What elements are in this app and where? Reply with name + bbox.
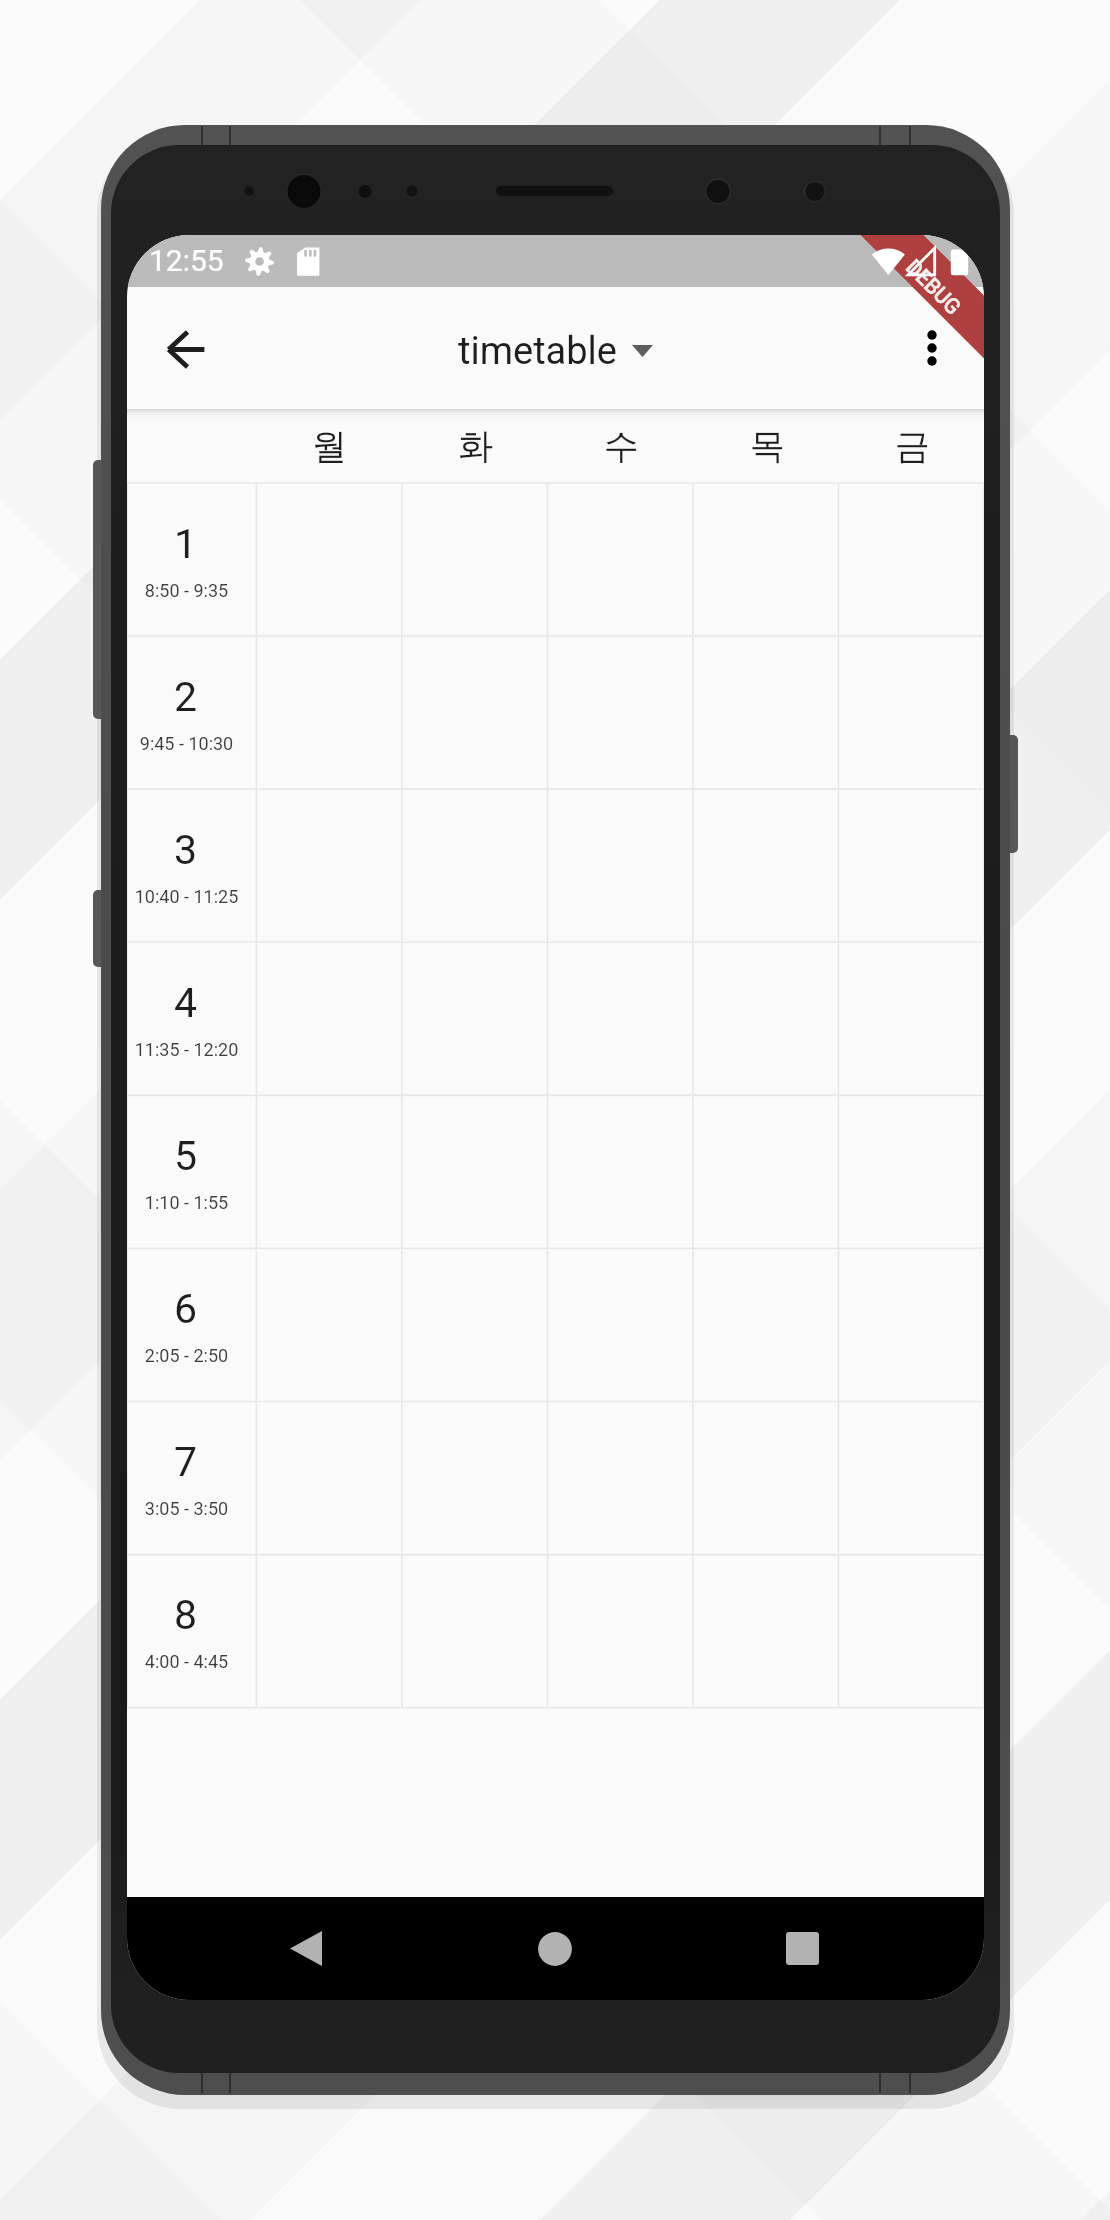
staticText: 10:40 - 11:25: [127, 886, 251, 907]
staticText: 9:45 - 10:30: [127, 733, 251, 754]
staticText: 금: [895, 424, 930, 468]
staticText: 7: [127, 1438, 250, 1486]
button[interactable]: Back: [241, 1897, 371, 2000]
staticText: 2: [127, 673, 250, 721]
button[interactable]: 화: [402, 409, 548, 483]
staticText: 수: [604, 424, 639, 468]
staticText: 4: [127, 979, 250, 1027]
button[interactable]: 월: [256, 409, 402, 483]
staticText: 화: [458, 424, 493, 468]
staticText: 월: [312, 424, 347, 468]
button[interactable]: Back: [127, 290, 211, 374]
staticText: DEBUG: [900, 255, 966, 320]
button[interactable]: Recent apps: [737, 1897, 867, 2000]
button[interactable]: 수: [548, 409, 694, 483]
staticText: 4:00 - 4:45: [127, 1651, 251, 1672]
staticText: 12:55: [149, 243, 224, 278]
staticText: 8:50 - 9:35: [127, 580, 251, 601]
staticText: 8: [127, 1591, 250, 1639]
staticText: 목: [750, 424, 785, 468]
staticText: 3:05 - 3:50: [127, 1498, 251, 1519]
staticText: 1:10 - 1:55: [127, 1192, 251, 1213]
staticText: 6: [127, 1285, 250, 1333]
staticText: timetable: [458, 329, 617, 374]
button[interactable]: Home: [490, 1897, 620, 2000]
button[interactable]: More options: [890, 306, 974, 390]
staticText: 2:05 - 2:50: [127, 1345, 251, 1366]
staticText: 11:35 - 12:20: [127, 1039, 251, 1060]
button[interactable]: 목: [694, 409, 840, 483]
staticText: 1: [127, 520, 250, 568]
staticText: 3: [127, 826, 250, 874]
button[interactable]: 금: [840, 409, 984, 483]
staticText: 5: [127, 1132, 250, 1180]
